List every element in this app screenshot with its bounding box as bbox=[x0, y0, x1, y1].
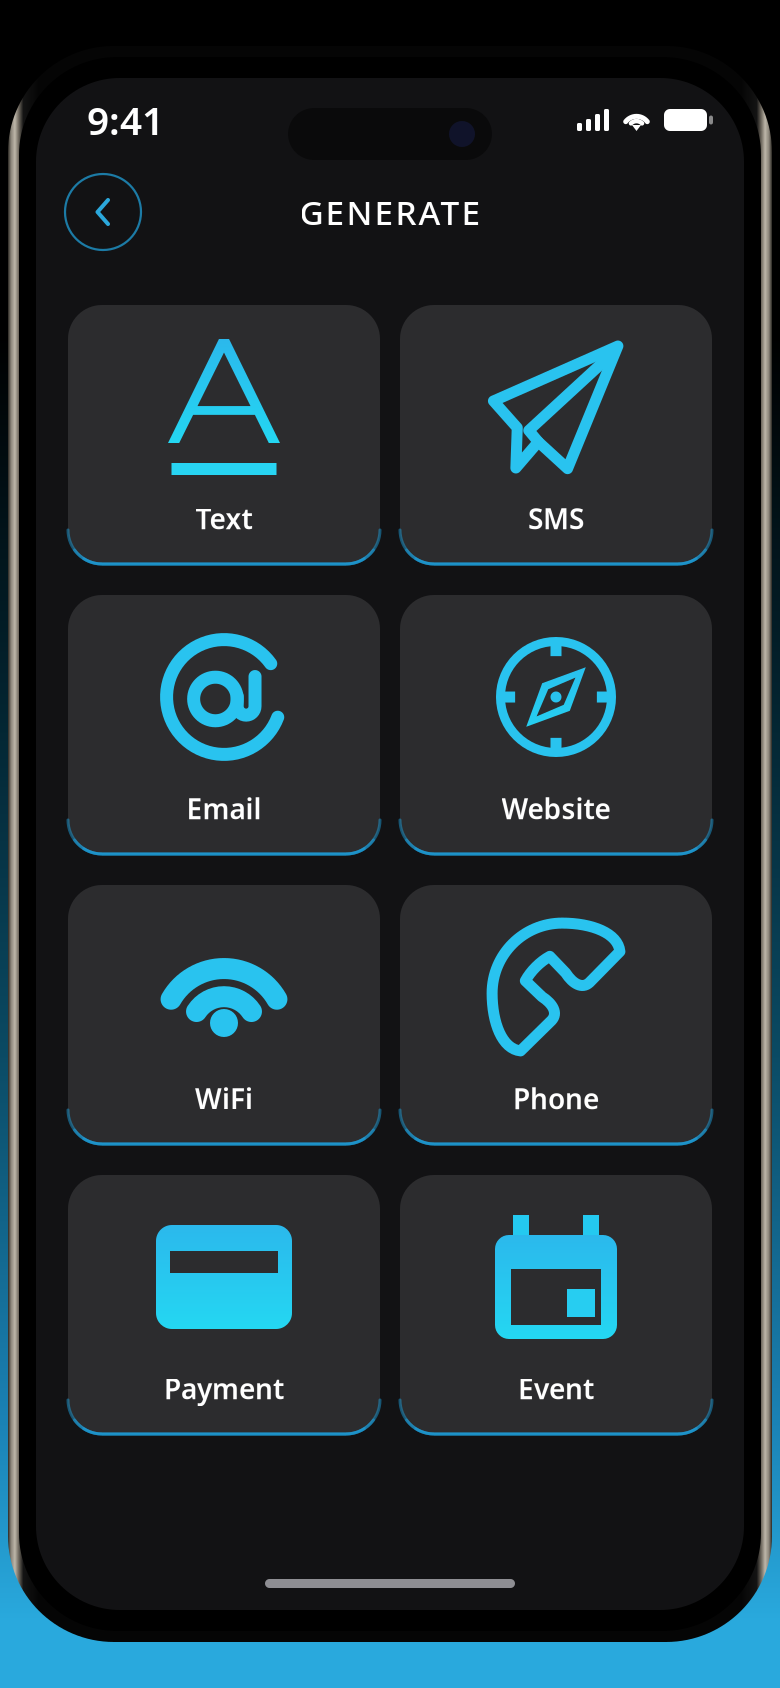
staticText: Website bbox=[501, 790, 610, 827]
staticText: GENERATE bbox=[299, 190, 480, 234]
staticText: Email bbox=[186, 790, 261, 827]
staticText: WiFi bbox=[195, 1080, 253, 1117]
button[interactable]: Payment bbox=[68, 1175, 380, 1434]
button[interactable]: Phone bbox=[400, 885, 712, 1144]
staticText: Payment bbox=[164, 1370, 284, 1407]
button[interactable]: Email bbox=[68, 595, 380, 854]
staticText: SMS bbox=[528, 500, 584, 537]
staticText: Text bbox=[195, 500, 252, 537]
button[interactable]: SMS bbox=[400, 305, 712, 564]
staticText: 9:41 bbox=[87, 94, 164, 146]
button[interactable]: WiFi bbox=[68, 885, 380, 1144]
button[interactable]: Website bbox=[400, 595, 712, 854]
button[interactable]: Text bbox=[68, 305, 380, 564]
staticText: Event bbox=[518, 1370, 594, 1407]
staticText: Phone bbox=[513, 1080, 599, 1117]
button[interactable]: Event bbox=[400, 1175, 712, 1434]
button[interactable]: Back bbox=[65, 174, 141, 250]
